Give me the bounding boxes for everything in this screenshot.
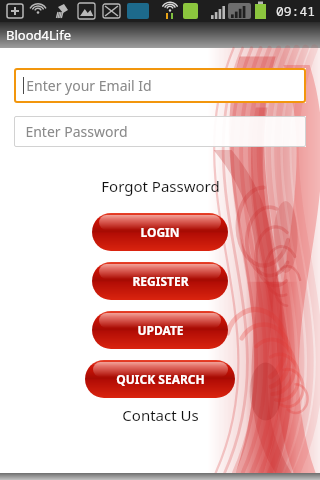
button[interactable]: Forgot Password — [95, 174, 226, 198]
button[interactable]: UPDATE — [92, 311, 228, 349]
button[interactable]: LOGIN — [92, 213, 228, 251]
staticText: 09:41 — [276, 2, 316, 20]
staticText: QUICK SEARCH — [116, 371, 205, 387]
button[interactable]: Enter Password — [14, 116, 306, 147]
button[interactable]: QUICK SEARCH — [85, 360, 235, 398]
staticText: Blood4Life — [6, 26, 71, 44]
button[interactable]: Enter your Email Id — [14, 68, 306, 103]
staticText: Enter Password — [25, 122, 128, 141]
staticText: LOGIN — [140, 224, 180, 240]
staticText: Enter your Email Id — [26, 76, 152, 95]
staticText: REGISTER — [132, 273, 189, 289]
button[interactable]: Contact Us — [116, 403, 205, 427]
button[interactable]: REGISTER — [92, 262, 228, 300]
staticText: UPDATE — [137, 322, 184, 338]
